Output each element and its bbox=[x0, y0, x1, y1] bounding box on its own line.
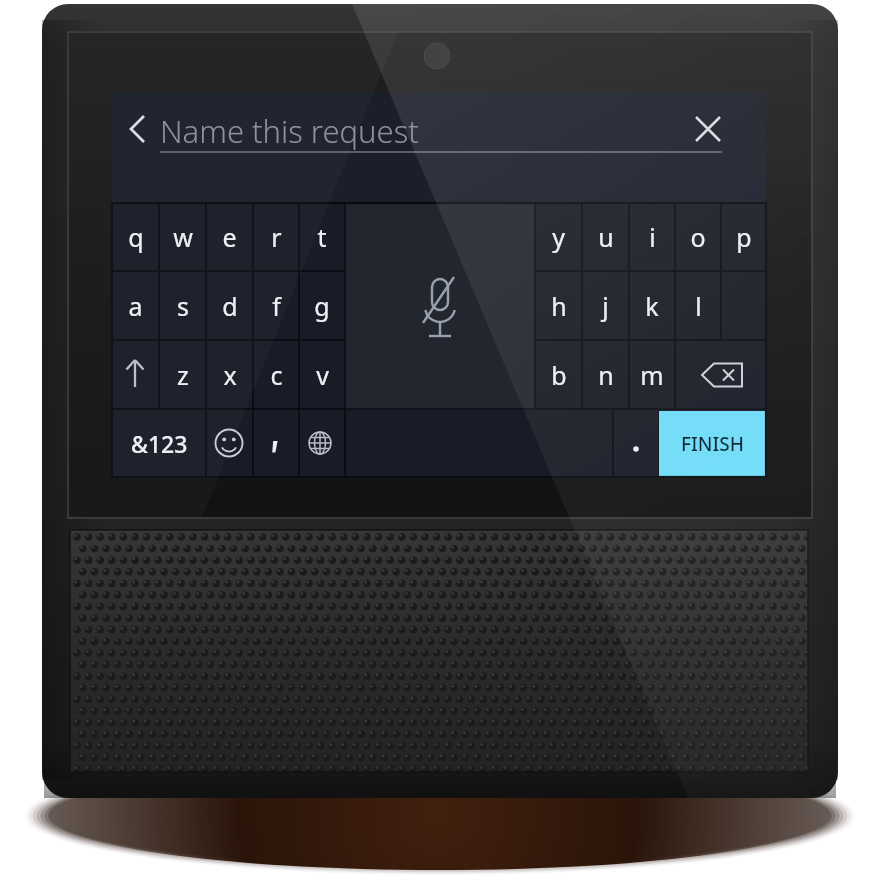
button[interactable]: Space bbox=[345, 409, 613, 477]
button[interactable]: Change language bbox=[299, 409, 345, 477]
staticText: e bbox=[222, 220, 237, 254]
button[interactable]: n bbox=[582, 340, 629, 409]
staticText: l bbox=[695, 289, 702, 323]
staticText: b bbox=[551, 358, 567, 392]
staticText: d bbox=[222, 289, 238, 323]
button[interactable]: i bbox=[629, 203, 675, 271]
button[interactable]: FINISH bbox=[659, 411, 766, 476]
button[interactable]: s bbox=[159, 271, 206, 340]
button[interactable]: Blank key bbox=[721, 271, 766, 340]
staticText: s bbox=[177, 289, 189, 323]
staticText: z bbox=[177, 358, 189, 392]
staticText: u bbox=[598, 220, 614, 254]
staticText: x bbox=[223, 358, 237, 392]
button[interactable]: a bbox=[112, 271, 159, 340]
staticText: q bbox=[128, 220, 144, 254]
staticText: v bbox=[316, 358, 329, 392]
staticText: k bbox=[645, 289, 659, 323]
button[interactable]: j bbox=[582, 271, 629, 340]
button[interactable]: Shift bbox=[112, 340, 159, 409]
staticText: r bbox=[271, 220, 282, 254]
staticText: i bbox=[649, 220, 656, 254]
button[interactable]: &123 bbox=[112, 409, 206, 477]
staticText: n bbox=[598, 358, 614, 392]
button[interactable]: o bbox=[675, 203, 721, 271]
button[interactable]: Comma bbox=[253, 409, 299, 477]
button[interactable]: r bbox=[253, 203, 299, 271]
button[interactable]: y bbox=[535, 203, 582, 271]
staticText: o bbox=[690, 220, 706, 254]
button[interactable]: Emoji bbox=[206, 409, 253, 477]
button[interactable]: Microphone muted bbox=[345, 203, 535, 409]
button[interactable]: q bbox=[112, 203, 159, 271]
button[interactable]: w bbox=[159, 203, 206, 271]
button[interactable]: v bbox=[299, 340, 345, 409]
button[interactable]: f bbox=[253, 271, 299, 340]
staticText: h bbox=[551, 289, 567, 323]
button[interactable]: x bbox=[206, 340, 253, 409]
button[interactable]: h bbox=[535, 271, 582, 340]
button[interactable]: g bbox=[299, 271, 345, 340]
button[interactable]: Back bbox=[112, 93, 166, 163]
button[interactable]: l bbox=[675, 271, 721, 340]
button[interactable]: t bbox=[299, 203, 345, 271]
button[interactable]: k bbox=[629, 271, 675, 340]
button[interactable]: p bbox=[721, 203, 766, 271]
staticText: c bbox=[270, 358, 283, 392]
staticText: Name this request bbox=[160, 110, 419, 152]
button[interactable]: c bbox=[253, 340, 299, 409]
button[interactable]: d bbox=[206, 271, 253, 340]
staticText: y bbox=[552, 220, 565, 254]
button[interactable]: m bbox=[629, 340, 675, 409]
staticText: f bbox=[272, 289, 281, 323]
button[interactable]: z bbox=[159, 340, 206, 409]
staticText: &123 bbox=[131, 428, 188, 459]
button[interactable]: Period bbox=[613, 409, 659, 477]
button[interactable]: e bbox=[206, 203, 253, 271]
button[interactable]: b bbox=[535, 340, 582, 409]
staticText: m bbox=[640, 358, 664, 392]
button[interactable]: Name this request bbox=[112, 93, 766, 203]
staticText: a bbox=[128, 289, 143, 323]
staticText: w bbox=[173, 220, 193, 254]
button[interactable]: u bbox=[582, 203, 629, 271]
staticText: g bbox=[314, 289, 330, 323]
staticText: p bbox=[736, 220, 752, 254]
button[interactable]: Close bbox=[680, 100, 740, 160]
staticText: j bbox=[602, 289, 609, 323]
staticText: t bbox=[317, 220, 327, 254]
button[interactable]: Backspace bbox=[675, 340, 766, 409]
staticText: FINISH bbox=[681, 431, 744, 457]
